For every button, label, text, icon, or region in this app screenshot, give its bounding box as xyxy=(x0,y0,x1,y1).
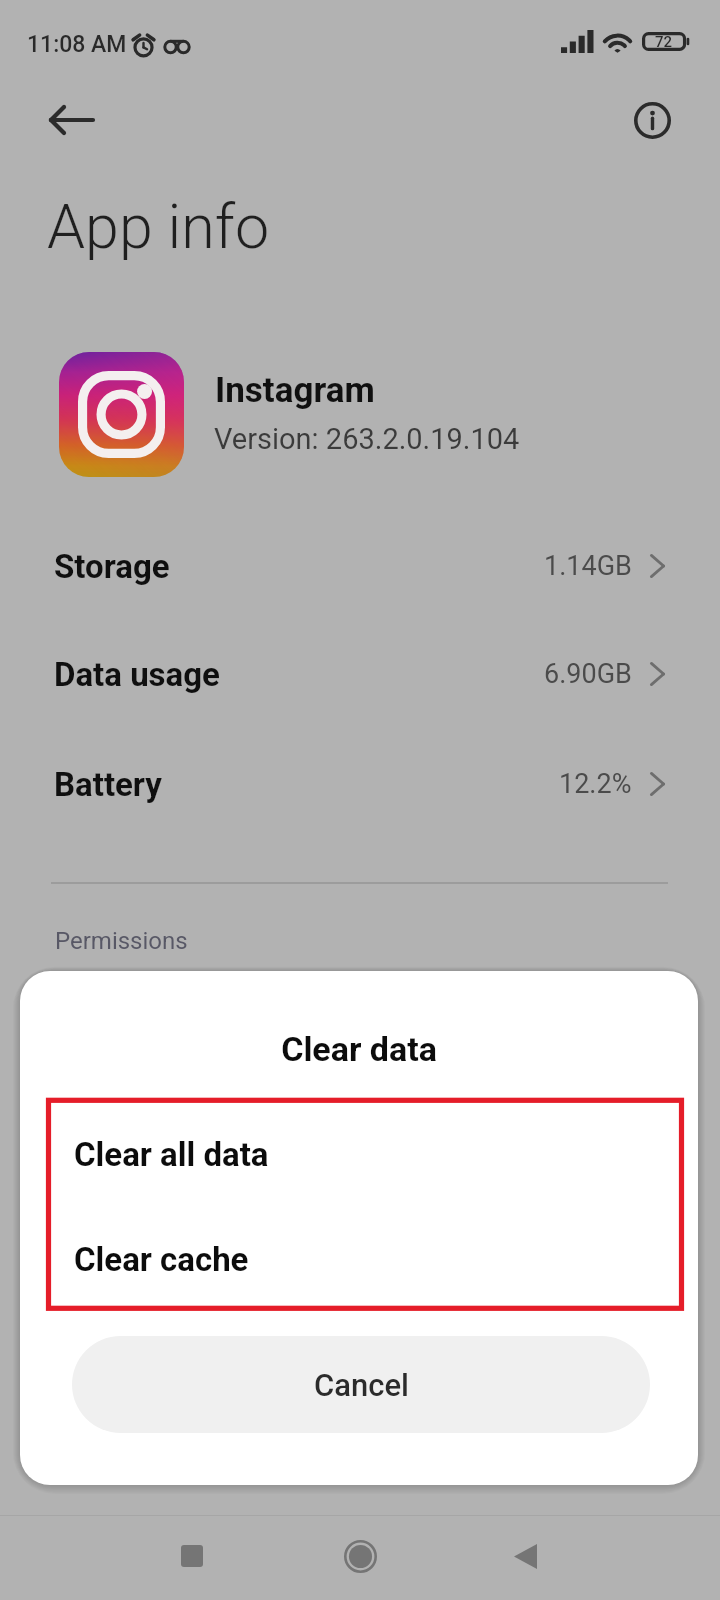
staticText: Version: 263.2.0.19.104 xyxy=(214,422,520,456)
button[interactable]: Clear cache xyxy=(20,1207,698,1312)
staticText: Permissions xyxy=(55,927,188,955)
button[interactable]: Home xyxy=(327,1523,393,1589)
staticText: 72 xyxy=(655,33,673,51)
button[interactable]: Back xyxy=(492,1523,558,1589)
staticText: 12.2% xyxy=(559,768,632,800)
staticText: Storage xyxy=(54,547,170,586)
staticText: Clear cache xyxy=(74,1240,249,1279)
button[interactable]: Storage xyxy=(0,534,720,598)
staticText: Data usage xyxy=(54,655,220,694)
button[interactable]: Clear all data xyxy=(20,1102,698,1207)
staticText: 6.90GB xyxy=(544,658,632,690)
staticText: Instagram xyxy=(215,370,375,411)
staticText: Battery xyxy=(54,765,162,804)
button[interactable]: Back xyxy=(44,92,100,148)
button[interactable]: Data usage xyxy=(0,642,720,706)
staticText: Cancel xyxy=(314,1367,409,1403)
staticText: Clear data xyxy=(20,1029,698,1069)
staticText: 1.14GB xyxy=(544,550,632,582)
staticText: 11:08 AM xyxy=(27,31,127,58)
button[interactable]: Cancel xyxy=(72,1336,650,1433)
staticText: App info xyxy=(47,191,270,262)
button[interactable]: App details xyxy=(624,92,680,148)
button[interactable]: Recent apps xyxy=(159,1523,225,1589)
button[interactable]: Battery xyxy=(0,752,720,816)
staticText: Clear all data xyxy=(74,1135,269,1174)
